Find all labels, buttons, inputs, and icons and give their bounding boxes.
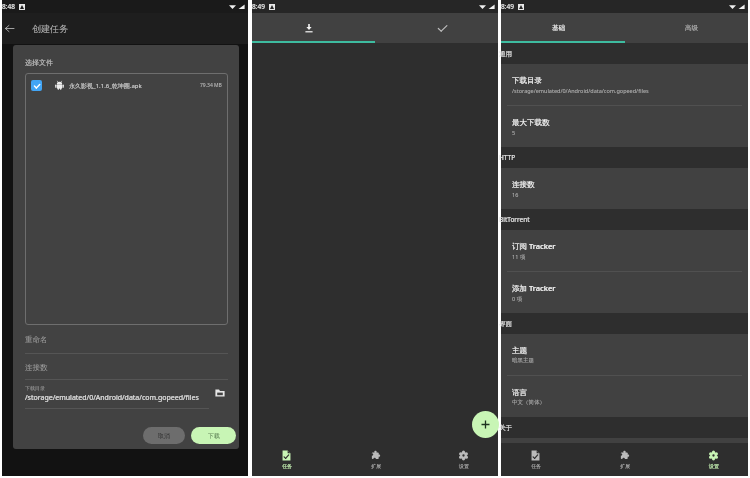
button[interactable]: 下载目录	[501, 64, 748, 105]
staticText: 添加 Tracker	[512, 283, 556, 293]
button[interactable]: 取消	[143, 427, 185, 444]
staticText: 下载目录	[512, 76, 542, 85]
button[interactable]: Downloading	[252, 13, 375, 43]
staticText: 8:49	[252, 2, 265, 11]
staticText: 8:49	[501, 2, 514, 11]
staticText: 语言	[512, 388, 527, 397]
button[interactable]: 语言	[501, 376, 748, 417]
staticText: 5	[512, 129, 516, 136]
button[interactable]: Back	[2, 13, 16, 44]
staticText: 中文（简体）	[512, 399, 545, 406]
button[interactable]: 设置	[443, 443, 484, 476]
staticText: 下载目录	[25, 385, 45, 391]
staticText: 高级	[685, 24, 698, 32]
button[interactable]: 设置	[693, 443, 734, 476]
staticText: 关于	[499, 424, 512, 432]
staticText: 任务	[282, 463, 292, 469]
staticText: 连接数	[512, 180, 535, 189]
staticText: 扩展	[371, 463, 381, 469]
staticText: HTTP	[499, 153, 516, 162]
staticText: 8:48	[2, 2, 15, 11]
staticText: 连接数	[25, 363, 48, 372]
staticText: 暗黑主题	[512, 357, 534, 364]
staticText: 79.34 MB	[200, 82, 222, 89]
staticText: 订阅 Tracker	[512, 241, 556, 251]
button[interactable]: 基础	[501, 13, 624, 43]
staticText: 设置	[459, 463, 469, 469]
staticText: /storage/emulated/0/Android/data/com.gop…	[512, 87, 649, 94]
button[interactable]: Select file	[31, 80, 42, 91]
staticText: BitTorrent	[499, 215, 530, 224]
button[interactable]: 主题	[501, 334, 748, 375]
staticText: 选择文件	[25, 58, 53, 67]
staticText: 界面	[499, 320, 512, 328]
button[interactable]: 下载	[191, 427, 236, 444]
staticText: 0 项	[512, 295, 523, 303]
button[interactable]: 扩展	[355, 443, 396, 476]
staticText: 扩展	[620, 463, 630, 469]
button[interactable]: 添加 Tracker	[501, 272, 748, 313]
button[interactable]: 订阅 Tracker	[501, 230, 748, 271]
button[interactable]: Completed	[375, 13, 498, 43]
button[interactable]: Add task	[472, 411, 499, 438]
staticText: 基础	[552, 24, 565, 32]
staticText: 16	[512, 191, 519, 198]
button[interactable]: 扩展	[604, 443, 645, 476]
staticText: 设置	[709, 463, 719, 469]
button[interactable]: 最大下载数	[501, 106, 748, 147]
staticText: 取消	[158, 432, 170, 440]
button[interactable]: 任务	[515, 443, 556, 476]
staticText: 下载	[208, 432, 220, 440]
staticText: 主题	[512, 346, 527, 355]
staticText: 创建任务	[32, 23, 68, 34]
staticText: 重命名	[25, 335, 48, 344]
button[interactable]: 连接数	[501, 168, 748, 209]
button[interactable]: 高级	[624, 13, 748, 43]
staticText: /storage/emulated/0/Android/data/com.gop…	[25, 393, 199, 403]
staticText: 任务	[531, 463, 541, 469]
staticText: 永久影视_1.1.6_乾坤圈.apk	[69, 82, 142, 90]
staticText: 最大下载数	[512, 118, 550, 127]
staticText: 11 项	[512, 253, 526, 261]
staticText: 通用	[499, 50, 512, 58]
button[interactable]: 任务	[266, 443, 307, 476]
button[interactable]: Browse folder	[212, 385, 228, 401]
